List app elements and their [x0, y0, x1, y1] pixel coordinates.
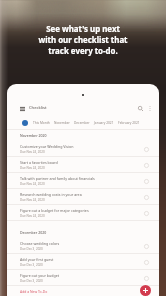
button[interactable]: January 2021: [92, 121, 116, 125]
staticText: January 2021: [94, 121, 114, 125]
staticText: Checklist: [29, 105, 47, 111]
staticText: Customize your Wedding Vision: [20, 144, 74, 149]
staticText: Add your first guest: [20, 257, 54, 262]
staticText: November 2020: [20, 133, 47, 138]
staticText: Figure out your budget: [20, 273, 60, 278]
staticText: Choose wedding colors: [20, 241, 60, 246]
staticText: Due Nov 24, 2020: [20, 182, 45, 186]
staticText: Research wedding costs in your area: [20, 192, 82, 197]
button[interactable]: Figure out your budget: [7, 270, 159, 286]
staticText: December 2020: [20, 230, 47, 235]
staticText: This Month: [33, 121, 50, 125]
button[interactable]: More options: [145, 104, 154, 113]
button[interactable]: Add to-do: [140, 285, 151, 296]
staticText: Due Nov 24, 2020: [20, 198, 45, 202]
staticText: Due Nov 24, 2020: [20, 150, 45, 154]
button[interactable]: Add your first guest: [7, 254, 159, 270]
staticText: Due Dec 3, 2020: [20, 247, 43, 251]
button[interactable]: Talk with partner and family about finan…: [7, 173, 159, 189]
staticText: See what's up next with our checklist th…: [0, 24, 166, 57]
button[interactable]: Research wedding costs in your area: [7, 189, 159, 205]
staticText: Due Dec 3, 2020: [20, 263, 43, 267]
staticText: Due Nov 24, 2020: [20, 214, 45, 218]
staticText: February 2021: [118, 121, 140, 125]
button[interactable]: Menu: [18, 104, 27, 113]
button[interactable]: Customize your Wedding Vision: [7, 141, 159, 157]
button[interactable]: Search: [135, 103, 145, 113]
button[interactable]: December: [72, 121, 92, 125]
button[interactable]: Figure out a budget for major categories: [7, 205, 159, 221]
staticText: Due Dec 3, 2020: [20, 279, 43, 283]
button[interactable]: February 2021: [116, 121, 142, 125]
staticText: Figure out a budget for major categories: [20, 208, 89, 213]
button[interactable]: Add a New To-Do: [7, 286, 159, 296]
staticText: Add a New To-Do: [20, 289, 48, 294]
button[interactable]: This Month: [31, 121, 52, 125]
staticText: Due Nov 24, 2020: [20, 166, 45, 170]
button[interactable]: Start a favorites board: [7, 157, 159, 173]
staticText: Talk with partner and family about finan…: [20, 176, 95, 181]
button[interactable]: Current month: [22, 120, 28, 126]
staticText: November: [54, 121, 70, 125]
staticText: December: [74, 121, 90, 125]
staticText: Start a favorites board: [20, 160, 58, 165]
button[interactable]: Choose wedding colors: [7, 238, 159, 254]
button[interactable]: November: [52, 121, 72, 125]
